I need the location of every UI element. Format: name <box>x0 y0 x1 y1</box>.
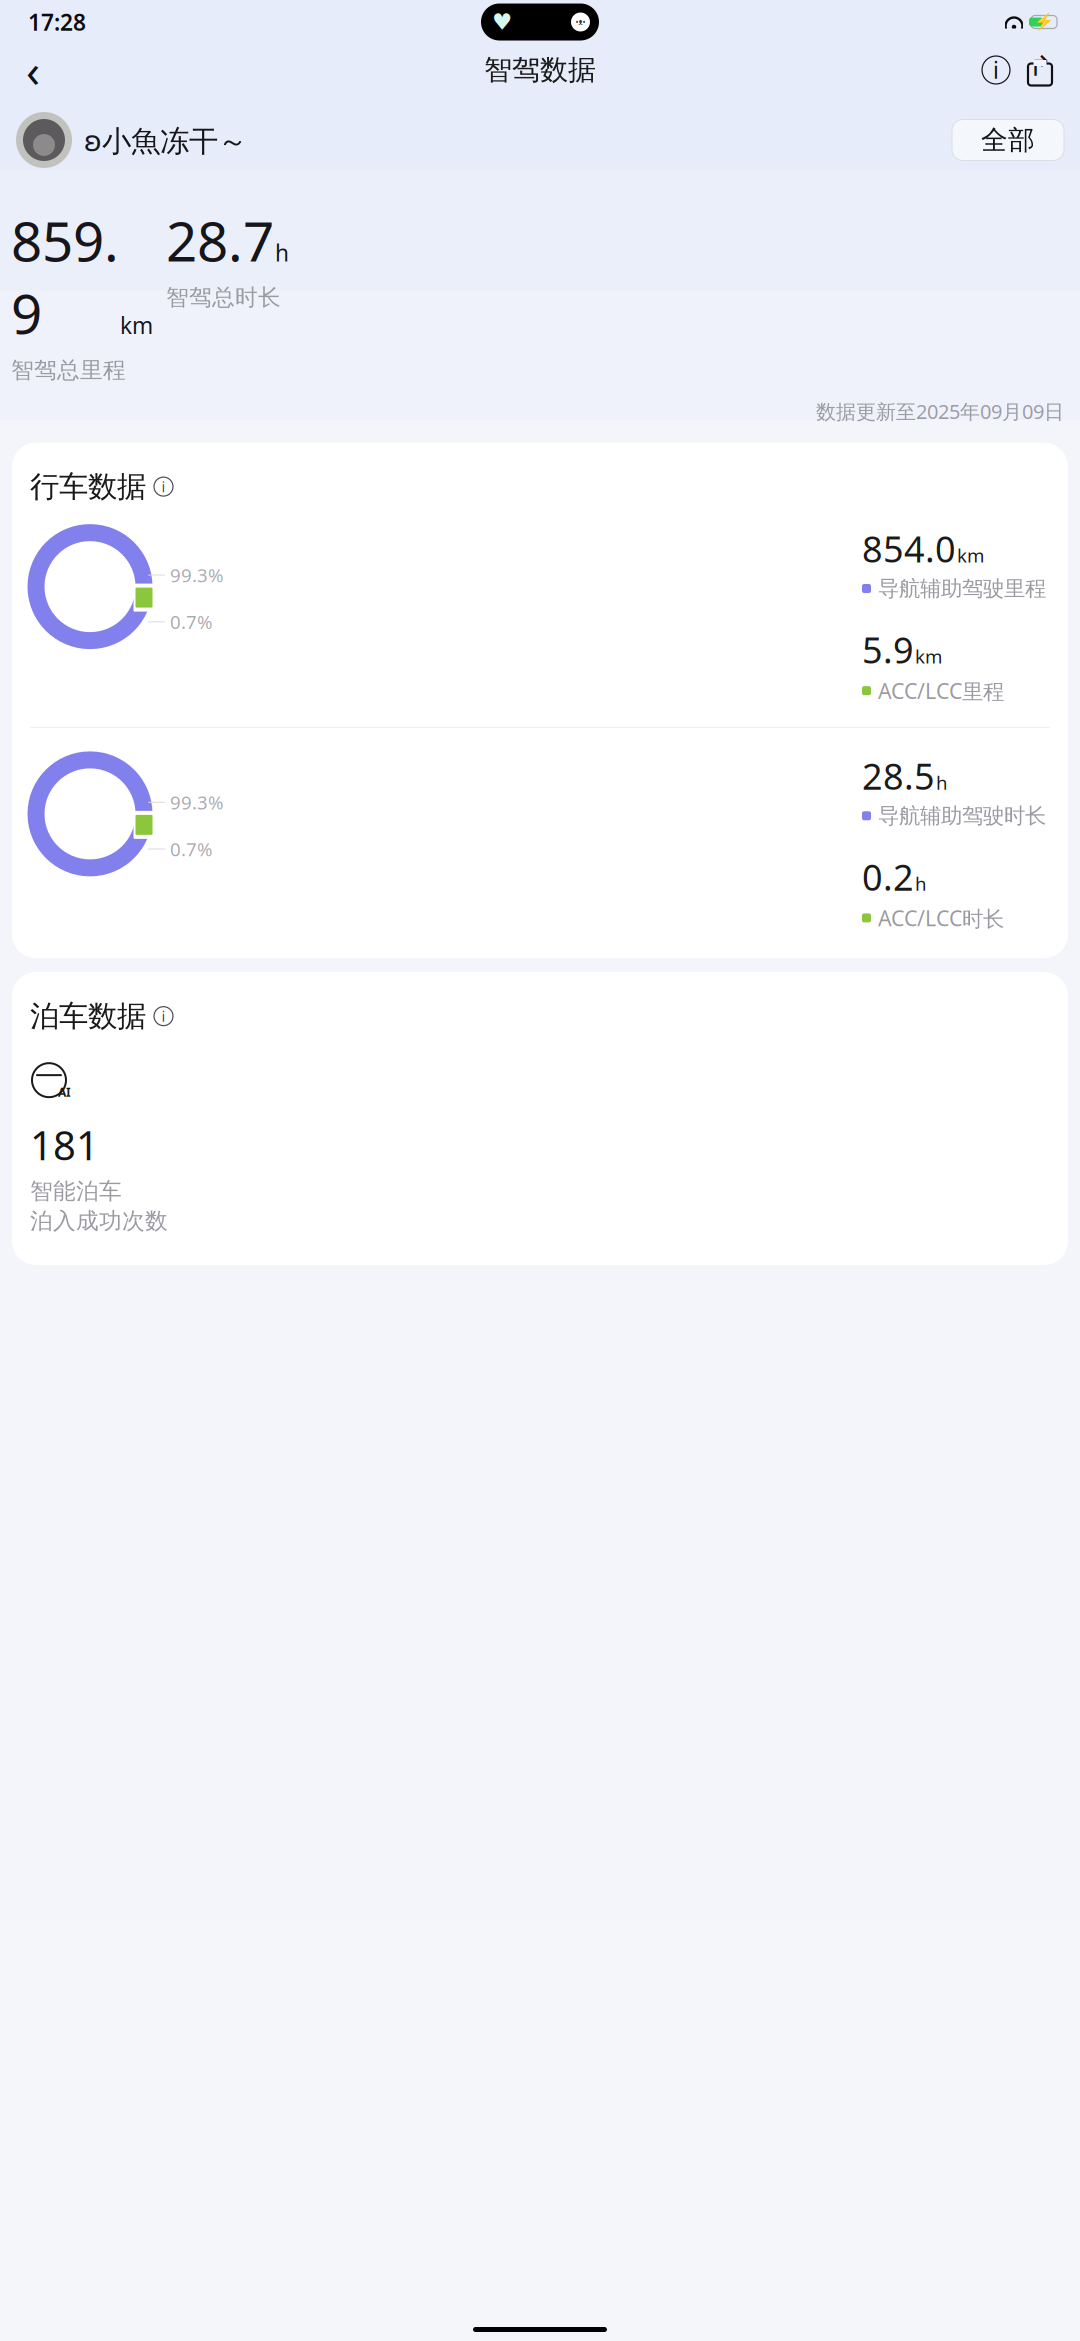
staticText: km <box>957 543 984 568</box>
staticText: 28.5 <box>862 752 935 800</box>
staticText: i <box>993 55 999 85</box>
staticText: km <box>915 644 942 669</box>
staticText: 智能泊车 <box>30 1177 122 1205</box>
staticText: 智驾总时长 <box>166 284 281 311</box>
button[interactable]: 返回 <box>10 48 56 92</box>
staticText: 导航辅助驾驶时长 <box>878 803 1046 829</box>
staticText: h <box>936 770 948 795</box>
staticText: i <box>161 477 165 496</box>
staticText: 导航辅助驾驶里程 <box>878 575 1046 602</box>
staticText: •ᴥ• <box>575 17 585 27</box>
staticText: i <box>161 1006 165 1026</box>
staticText: 智驾总里程 <box>11 356 126 384</box>
staticText: ʚ小魚冻干～ <box>84 120 247 159</box>
staticText: ⚡ <box>1034 13 1054 31</box>
staticText: 859.9 <box>11 204 119 349</box>
staticText: ACC/LCC时长 <box>878 904 1004 932</box>
button[interactable]: 行车数据说明 <box>154 477 173 496</box>
staticText: 泊车数据 <box>30 998 146 1034</box>
staticText: ♥ <box>492 9 512 35</box>
staticText: 99.3% <box>170 790 224 815</box>
button[interactable]: 信息 <box>974 48 1018 92</box>
button[interactable]: 分享 <box>1018 48 1062 92</box>
staticText: 数据更新至2025年09月09日 <box>816 398 1064 425</box>
button[interactable]: 泊车数据说明 <box>154 1007 173 1026</box>
staticText: 智驾数据 <box>484 53 596 87</box>
staticText: km <box>120 310 153 340</box>
staticText: h <box>275 238 289 268</box>
button[interactable]: 全部 <box>952 119 1064 160</box>
button[interactable]: 用户 小魚冻干 <box>16 112 247 168</box>
staticText: 17:28 <box>28 7 86 37</box>
staticText: 行车数据 <box>30 469 146 505</box>
staticText: ACC/LCC里程 <box>878 676 1004 705</box>
staticText: 181 <box>30 1118 99 1171</box>
staticText: 0.2 <box>862 853 914 901</box>
staticText: ↱ <box>1028 50 1051 82</box>
staticText: h <box>915 871 927 896</box>
staticText: 0.7% <box>170 609 213 634</box>
staticText: 854.0 <box>862 525 956 572</box>
staticText: 5.9 <box>862 626 914 673</box>
staticText: 99.3% <box>170 563 224 587</box>
staticText: ‹ <box>26 40 40 100</box>
staticText: 0.7% <box>170 837 213 861</box>
staticText: AI <box>58 1084 71 1100</box>
staticText: 全部 <box>981 124 1035 156</box>
staticText: 泊入成功次数 <box>30 1207 168 1235</box>
staticText: 28.7 <box>166 204 274 277</box>
